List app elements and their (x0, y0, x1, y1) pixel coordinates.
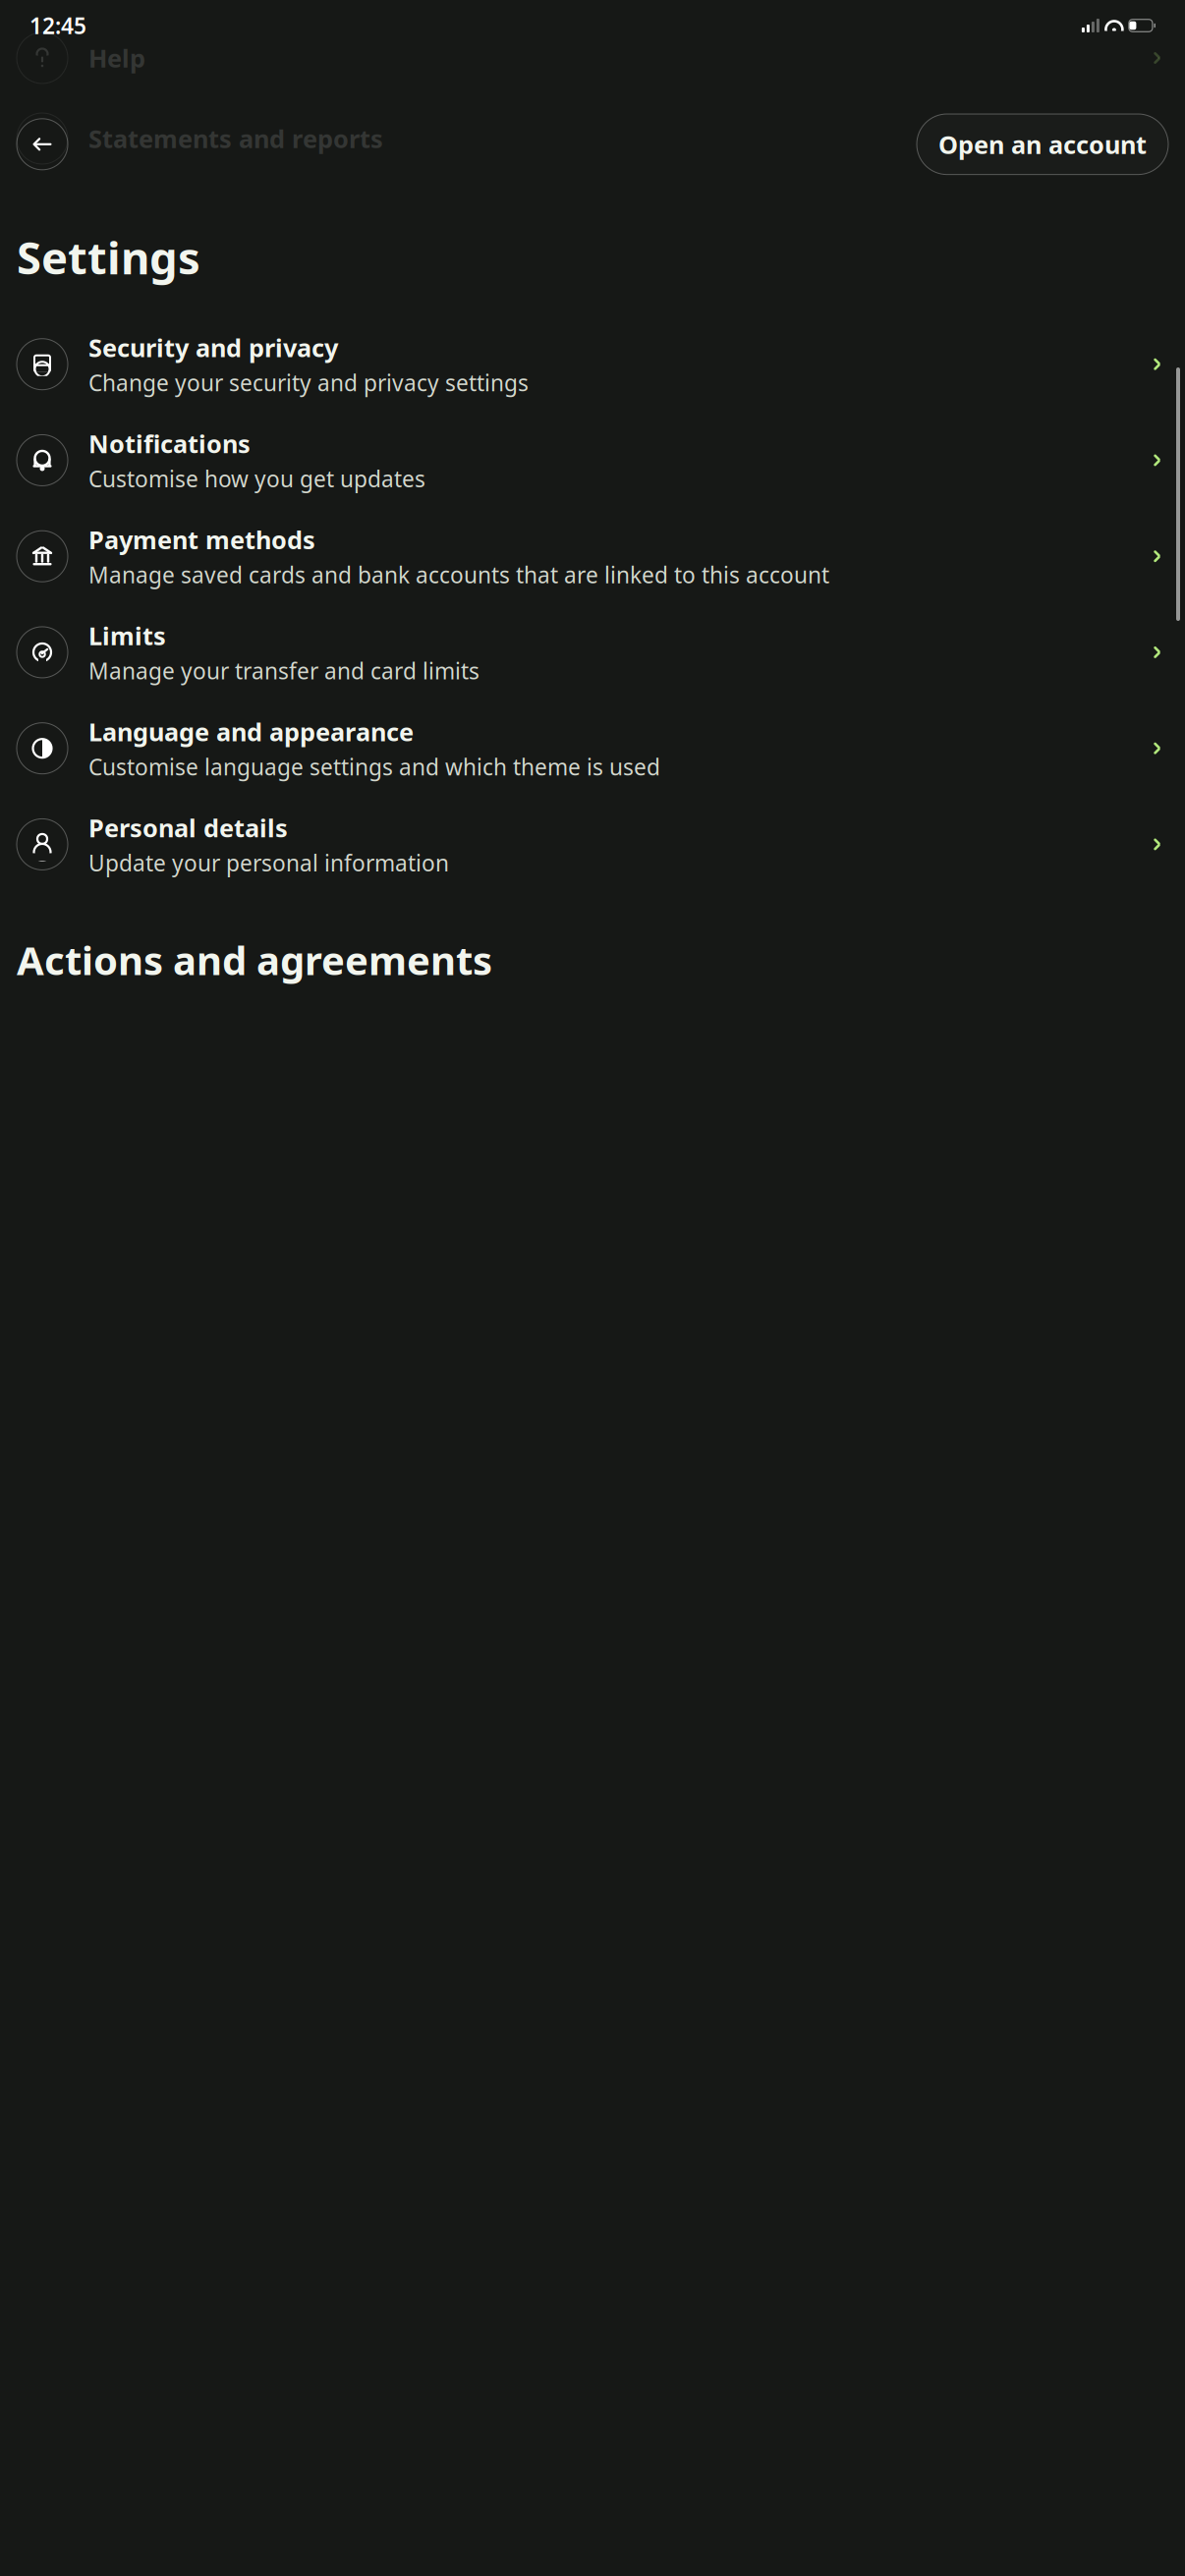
button[interactable]: Back (17, 119, 68, 170)
staticText: Open an account (938, 128, 1147, 161)
staticText: Update your personal information (88, 848, 449, 878)
staticText: Actions and agreements (17, 934, 492, 986)
button[interactable]: Personal details (0, 796, 1185, 892)
staticText: Security and privacy (88, 331, 338, 364)
staticText: Notifications (88, 427, 251, 460)
staticText: Limits (88, 619, 166, 652)
staticText: Customise how you get updates (88, 464, 425, 493)
staticText: Statements and reports (88, 122, 383, 155)
staticText: 12:45 (29, 11, 86, 40)
button[interactable]: Language and appearance (0, 700, 1185, 796)
button[interactable]: Security and privacy (0, 316, 1185, 412)
staticText: Personal details (88, 811, 288, 844)
button[interactable]: Open an account (917, 114, 1168, 174)
staticText: Payment methods (88, 523, 315, 556)
button[interactable]: Notifications (0, 412, 1185, 508)
staticText: Change your security and privacy setting… (88, 368, 529, 398)
staticText: Help (88, 41, 145, 74)
staticText: Language and appearance (88, 715, 414, 748)
staticText: Manage your transfer and card limits (88, 656, 480, 686)
button[interactable]: Payment methods (0, 508, 1185, 604)
button[interactable]: Limits (0, 604, 1185, 700)
staticText: Manage saved cards and bank accounts tha… (88, 560, 829, 590)
staticText: Customise language settings and which th… (88, 752, 660, 782)
staticText: Settings (17, 228, 200, 287)
